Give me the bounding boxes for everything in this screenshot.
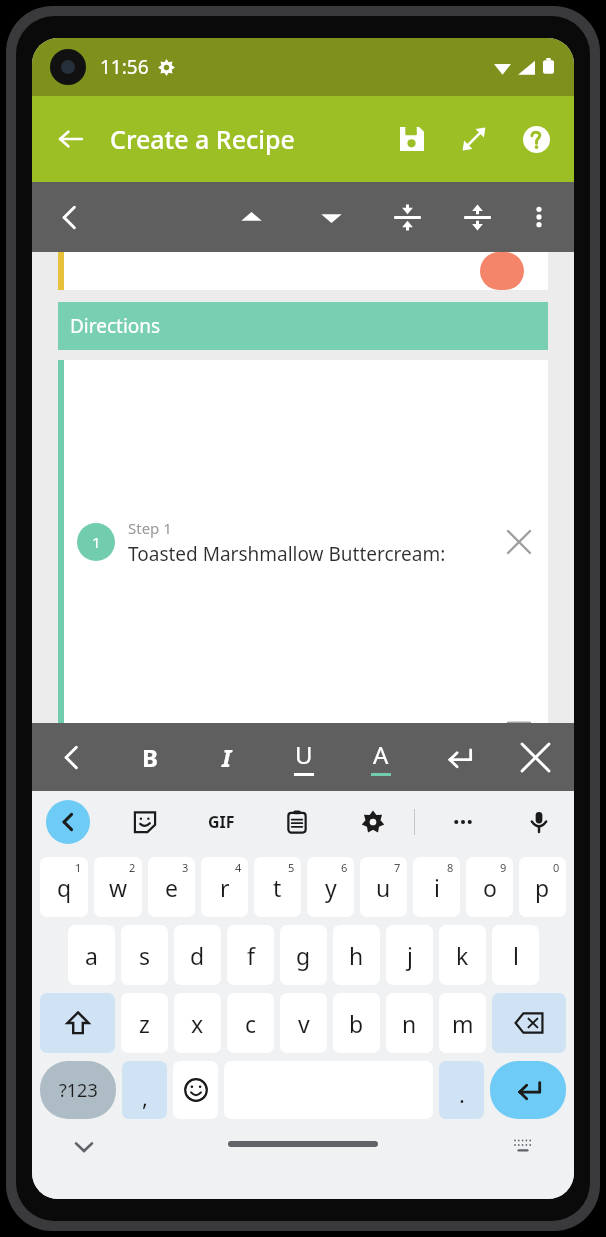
button[interactable]: Directions (58, 302, 548, 350)
staticText: c (245, 1008, 257, 1039)
button[interactable]: Enter (490, 1061, 566, 1119)
button[interactable]: Hide keyboard (64, 1127, 104, 1167)
button[interactable]: d (174, 925, 221, 985)
button[interactable]: p (519, 857, 566, 917)
staticText: . (459, 1079, 465, 1109)
button[interactable]: Back (46, 800, 90, 844)
staticText: Step 1 (128, 518, 172, 538)
button[interactable]: , (122, 1061, 167, 1119)
button[interactable]: t (254, 857, 301, 917)
button[interactable]: More options (518, 196, 560, 238)
button[interactable]: Shift (40, 993, 115, 1053)
button[interactable]: Voice input (518, 801, 560, 843)
button[interactable]: k (439, 925, 486, 985)
staticText: Directions (70, 313, 161, 339)
button[interactable]: Move down (308, 194, 354, 240)
button[interactable]: j (386, 925, 433, 985)
button[interactable]: Help (512, 115, 560, 163)
staticText: v (298, 1008, 310, 1039)
staticText: a (85, 940, 98, 971)
staticText: 8 (447, 860, 454, 875)
staticText: z (139, 1008, 150, 1039)
staticText: 5 (288, 860, 295, 875)
button[interactable]: o (466, 857, 513, 917)
button[interactable]: GIF (200, 801, 242, 843)
button[interactable]: ?123 (40, 1061, 116, 1119)
button[interactable]: u (360, 857, 407, 917)
staticText: t (273, 872, 282, 903)
button[interactable]: I (204, 734, 250, 780)
staticText: n (402, 1008, 417, 1039)
button[interactable]: Move up (228, 194, 274, 240)
button[interactable]: r (201, 857, 248, 917)
button[interactable]: g (280, 925, 327, 985)
button[interactable]: Back (46, 114, 96, 164)
button[interactable]: Back (48, 734, 94, 780)
staticText: j (407, 940, 413, 971)
button[interactable]: Close (512, 734, 558, 780)
staticText: q (57, 872, 72, 903)
staticText: I (222, 741, 232, 774)
staticText: 1 (92, 532, 101, 552)
button[interactable]: 1 (58, 360, 548, 723)
staticText: ?123 (59, 1078, 98, 1103)
staticText: B (142, 741, 158, 774)
button[interactable]: Clipboard (276, 801, 318, 843)
staticText: d (190, 940, 205, 971)
staticText: 1 (75, 860, 82, 875)
staticText: s (139, 940, 151, 971)
button[interactable]: Save (388, 115, 436, 163)
button[interactable]: f (227, 925, 274, 985)
staticText: 3 (182, 860, 189, 875)
staticText: b (349, 1008, 364, 1039)
button[interactable]: s (121, 925, 168, 985)
button[interactable]: . (439, 1061, 484, 1119)
button[interactable]: B (127, 734, 173, 780)
button[interactable]: Settings (352, 801, 394, 843)
staticText: o (483, 872, 497, 903)
staticText: 2 (129, 860, 136, 875)
button[interactable]: A (358, 734, 404, 780)
button[interactable]: b (333, 993, 380, 1053)
button[interactable]: w (94, 857, 142, 917)
button[interactable]: i (413, 857, 460, 917)
button[interactable]: l (492, 925, 539, 985)
button[interactable]: z (121, 993, 168, 1053)
staticText: i (434, 872, 440, 903)
button[interactable]: Previous (46, 194, 92, 240)
staticText: m (452, 1008, 474, 1039)
button[interactable]: x (174, 993, 221, 1053)
button[interactable]: Change keyboard (506, 1129, 540, 1163)
staticText: 7 (394, 860, 401, 875)
staticText: u (376, 872, 391, 903)
button[interactable]: h (333, 925, 380, 985)
staticText: , (142, 1082, 148, 1112)
staticText: h (349, 940, 364, 971)
button[interactable] (58, 252, 548, 290)
button[interactable]: New line (435, 734, 481, 780)
staticText: GIF (208, 811, 235, 833)
button[interactable]: Delete step 1 (490, 360, 548, 723)
staticText: p (535, 872, 550, 903)
staticText: r (220, 872, 230, 903)
button[interactable]: m (439, 993, 486, 1053)
button[interactable]: e (148, 857, 195, 917)
button[interactable]: U (281, 734, 327, 780)
button[interactable]: y (307, 857, 354, 917)
staticText: 6 (341, 860, 348, 875)
button[interactable]: Collapse (384, 194, 430, 240)
staticText: l (513, 940, 519, 971)
button[interactable]: Expand (454, 194, 500, 240)
button[interactable]: v (280, 993, 327, 1053)
button[interactable]: Stickers (124, 801, 166, 843)
staticText: k (456, 940, 469, 971)
button[interactable]: More (442, 801, 484, 843)
button[interactable]: Emoji (173, 1061, 218, 1119)
button[interactable]: a (68, 925, 115, 985)
button[interactable]: Expand (450, 115, 498, 163)
button[interactable]: q (40, 857, 88, 917)
button[interactable]: Backspace (492, 993, 566, 1053)
button[interactable]: n (386, 993, 433, 1053)
button[interactable]: c (227, 993, 274, 1053)
